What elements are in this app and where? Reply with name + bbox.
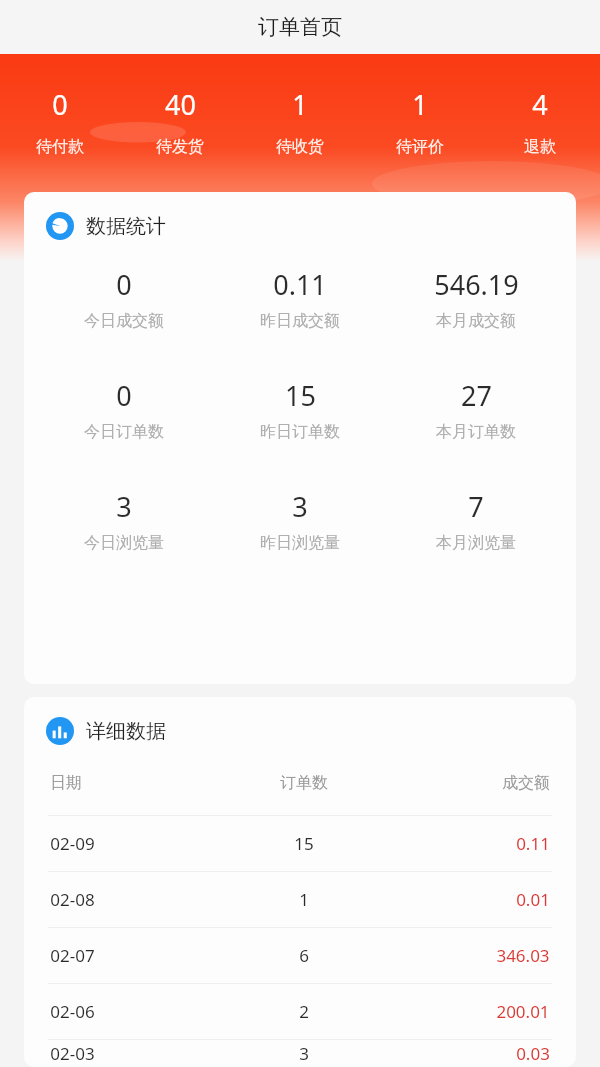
staticText: 订单数 (280, 773, 328, 793)
staticText: 本月订单数 (436, 422, 516, 442)
staticText: 1 (292, 86, 308, 123)
staticText: 02-09 (50, 832, 95, 855)
button[interactable]: 数据统计 (46, 212, 576, 240)
staticText: 昨日订单数 (260, 422, 340, 442)
staticText: 15 (294, 832, 314, 855)
staticText: 02-03 (50, 1042, 95, 1065)
staticText: 02-06 (50, 1000, 95, 1023)
other: 详细数据 (46, 717, 74, 745)
staticText: 今日浏览量 (84, 533, 164, 553)
staticText: 待付款 (36, 137, 84, 157)
staticText: 数据统计 (86, 214, 166, 239)
staticText: 待收货 (276, 137, 324, 157)
staticText: 退款 (524, 137, 556, 157)
staticText: 0.11 (273, 266, 327, 303)
staticText: 今日成交额 (84, 311, 164, 331)
button[interactable]: 02-09 (24, 816, 576, 871)
button[interactable]: 546.19 (388, 266, 564, 331)
staticText: 2 (299, 1000, 309, 1023)
staticText: 1 (412, 86, 428, 123)
staticText: 6 (299, 944, 309, 967)
staticText: 27 (461, 377, 492, 414)
button[interactable]: 详细数据 (46, 717, 576, 745)
staticText: 4 (532, 86, 548, 123)
button[interactable]: 0 (36, 377, 212, 442)
staticText: 0 (52, 86, 68, 123)
button[interactable]: 02-08 (24, 872, 576, 927)
staticText: 3 (292, 488, 308, 525)
staticText: 02-08 (50, 888, 95, 911)
button[interactable]: 7 (388, 488, 564, 553)
staticText: 本月成交额 (436, 311, 516, 331)
staticText: 0.03 (516, 1042, 550, 1065)
staticText: 3 (299, 1042, 309, 1065)
button[interactable]: 40 (120, 86, 240, 157)
staticText: 15 (285, 377, 316, 414)
staticText: 546.19 (434, 266, 519, 303)
button[interactable]: 02-07 (24, 928, 576, 983)
staticText: 待评价 (396, 137, 444, 157)
button[interactable]: 02-06 (24, 984, 576, 1039)
staticText: 成交额 (502, 773, 550, 793)
staticText: 订单首页 (258, 14, 342, 40)
staticText: 昨日成交额 (260, 311, 340, 331)
staticText: 02-07 (50, 944, 95, 967)
button[interactable]: 1 (360, 86, 480, 157)
staticText: 昨日浏览量 (260, 533, 340, 553)
staticText: 0.11 (516, 832, 550, 855)
button[interactable]: 27 (388, 377, 564, 442)
button[interactable]: 4 (480, 86, 600, 157)
staticText: 200.01 (496, 1000, 550, 1023)
staticText: 0 (116, 266, 132, 303)
button[interactable]: 15 (212, 377, 388, 442)
staticText: 3 (116, 488, 132, 525)
staticText: 本月浏览量 (436, 533, 516, 553)
button[interactable]: 02-03 (24, 1040, 576, 1067)
button[interactable]: 0 (0, 86, 120, 157)
staticText: 详细数据 (86, 719, 166, 744)
staticText: 7 (468, 488, 484, 525)
button[interactable]: 3 (36, 488, 212, 553)
staticText: 今日订单数 (84, 422, 164, 442)
staticText: 0.01 (516, 888, 550, 911)
other: 数据统计 (46, 212, 74, 240)
staticText: 待发货 (156, 137, 204, 157)
button[interactable]: 1 (240, 86, 360, 157)
button[interactable]: 0 (36, 266, 212, 331)
button[interactable]: 0.11 (212, 266, 388, 331)
staticText: 日期 (50, 773, 82, 793)
staticText: 1 (299, 888, 309, 911)
button[interactable]: 3 (212, 488, 388, 553)
staticText: 346.03 (496, 944, 550, 967)
staticText: 40 (165, 86, 196, 123)
staticText: 0 (116, 377, 132, 414)
